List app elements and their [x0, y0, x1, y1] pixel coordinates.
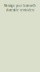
staticText: shareable reminders [6, 8, 34, 12]
staticText: Message your team with [4, 4, 36, 7]
